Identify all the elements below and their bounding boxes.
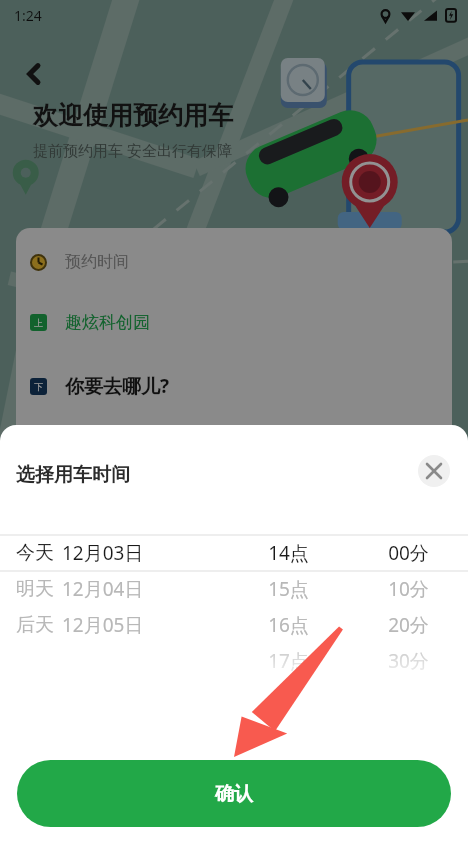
staticText: 16点 xyxy=(268,612,309,638)
staticText: 17点 xyxy=(268,648,309,674)
staticText: 你要去哪儿? xyxy=(65,373,170,399)
staticText: 提前预约用车 安全出行有保障 xyxy=(33,140,232,160)
button[interactable]: Back xyxy=(12,52,56,96)
staticText: 30分 xyxy=(388,648,429,674)
staticText: 确认 xyxy=(215,782,253,806)
button[interactable]: 确认 xyxy=(17,760,451,827)
staticText: 趣炫科创园 xyxy=(65,312,150,333)
staticText: 12月03日 xyxy=(62,540,144,566)
staticText: 14点 xyxy=(268,540,309,566)
staticText: 预约时间 xyxy=(65,252,129,272)
button[interactable]: Close xyxy=(418,455,450,487)
staticText: 18点 xyxy=(268,679,309,685)
staticText: 上 xyxy=(34,317,43,328)
staticText: 20分 xyxy=(388,612,429,638)
staticText: 1:24 xyxy=(14,6,42,25)
staticText: 欢迎使用预约用车 xyxy=(33,100,233,131)
staticText: 明天 xyxy=(16,577,54,601)
staticText: 00分 xyxy=(388,540,429,566)
staticText: 后天 xyxy=(16,613,54,637)
staticText: 选择用车时间 xyxy=(16,463,130,487)
staticText: 15点 xyxy=(268,576,309,602)
staticText: 12月05日 xyxy=(62,612,144,638)
staticText: 今天 xyxy=(16,541,54,565)
staticText: 10分 xyxy=(388,576,429,602)
staticText: 下 xyxy=(34,381,43,392)
staticText: 12月04日 xyxy=(62,576,144,602)
